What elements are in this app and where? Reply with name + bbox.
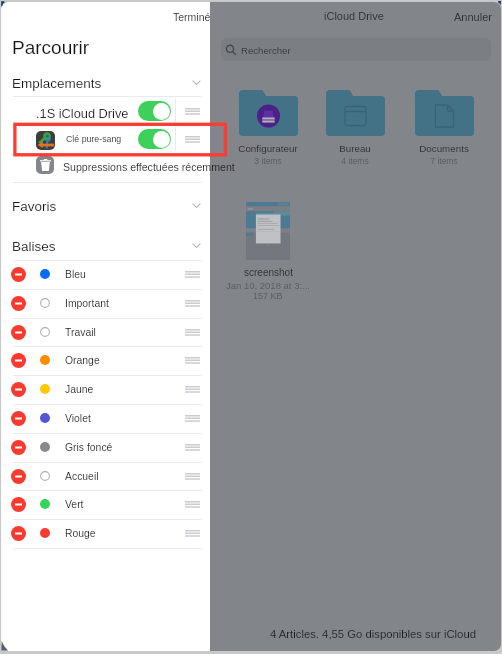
button[interactable]: Remove Travail	[1, 318, 210, 347]
button[interactable]: Configurateur	[224, 90, 312, 165]
staticText: Jan 10, 2018 at 3:...	[226, 280, 310, 291]
button[interactable]: Remove Jaune	[11, 382, 26, 397]
button[interactable]: Remove Travail	[11, 325, 26, 340]
staticText: Gris foncé	[65, 442, 113, 454]
button[interactable]: Emplacements	[1, 71, 210, 97]
staticText: Vert	[65, 499, 84, 511]
button[interactable]: Favoris	[1, 194, 210, 220]
staticText: Parcourir	[12, 37, 90, 58]
staticText: Important	[65, 298, 109, 310]
button[interactable]: Remove Accueil	[11, 469, 26, 484]
button[interactable]: .1S iCloud Drive	[1, 97, 210, 125]
button[interactable]: Remove Gris foncé	[1, 433, 210, 462]
button[interactable]: Remove Orange	[11, 353, 26, 368]
staticText: .1S iCloud Drive	[36, 106, 129, 120]
button[interactable]: Annuler	[451, 8, 495, 26]
button[interactable]: Remove Violet	[1, 404, 210, 433]
button[interactable]: Clé pure-sang	[1, 125, 210, 153]
staticText: 3 items	[254, 156, 282, 165]
button[interactable]	[1, 153, 210, 182]
staticText: Orange	[65, 355, 100, 367]
button[interactable]: Toggle	[138, 129, 171, 149]
button[interactable]: Terminé	[171, 9, 213, 25]
staticText: 7 items	[430, 156, 458, 165]
button[interactable]: Remove Rouge	[11, 526, 26, 541]
button[interactable]: Remove Accueil	[1, 462, 210, 491]
staticText: 4 items	[341, 156, 369, 165]
button[interactable]: Documents	[400, 90, 488, 165]
button[interactable]: Rechercher	[221, 38, 491, 61]
button[interactable]: Remove Bleu	[1, 260, 210, 289]
staticText: iCloud Drive	[324, 10, 384, 22]
button[interactable]: Remove Important	[11, 296, 26, 311]
staticText: Jaune	[65, 384, 94, 396]
button[interactable]: Remove Rouge	[1, 519, 210, 548]
staticText: Rechercher	[241, 45, 291, 56]
staticText: Annuler	[454, 11, 492, 23]
button[interactable]: Remove Gris foncé	[11, 440, 26, 455]
staticText: Favoris	[12, 199, 57, 214]
button[interactable]: Bureau	[311, 90, 399, 165]
staticText: Emplacements	[12, 76, 102, 91]
staticText: Clé pure-sang	[66, 134, 122, 144]
button[interactable]: Toggle	[138, 101, 171, 121]
button[interactable]: Remove Violet	[11, 411, 26, 426]
staticText: Configurateur	[238, 143, 298, 154]
staticText: Travail	[65, 327, 96, 339]
staticText: Rouge	[65, 528, 96, 540]
button[interactable]: Remove Jaune	[1, 375, 210, 404]
staticText: Bureau	[339, 143, 371, 154]
button[interactable]: Remove Vert	[1, 490, 210, 519]
button[interactable]: screenshot	[224, 202, 312, 301]
button[interactable]: Remove Orange	[1, 346, 210, 375]
button[interactable]: Remove Bleu	[11, 267, 26, 282]
staticText: Terminé	[173, 11, 211, 23]
staticText: screenshot	[244, 267, 293, 278]
staticText: Accueil	[65, 471, 99, 483]
staticText: 157 KB	[253, 291, 283, 301]
staticText: 4 Articles. 4,55 Go disponibles sur iClo…	[270, 628, 476, 641]
button[interactable]: Balises	[1, 234, 210, 260]
button[interactable]: Remove Important	[1, 289, 210, 318]
button[interactable]: Remove Vert	[11, 497, 26, 512]
staticText: Bleu	[65, 269, 86, 281]
staticText: Balises	[12, 239, 56, 254]
staticText: Suppressions effectuées récemment	[63, 161, 235, 173]
staticText: Documents	[419, 143, 469, 154]
staticText: Violet	[65, 413, 91, 425]
